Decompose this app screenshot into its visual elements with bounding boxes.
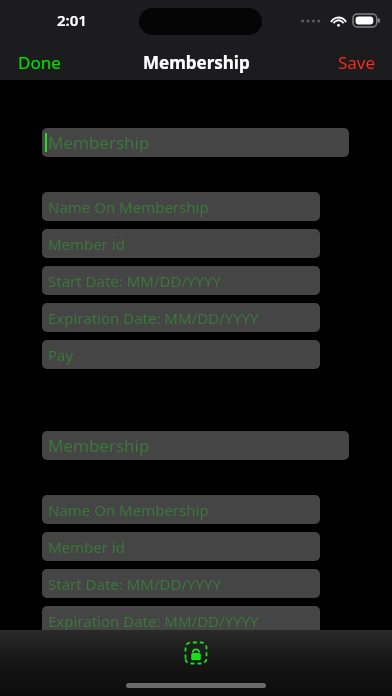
staticText: Name On Membership <box>48 197 209 217</box>
staticText: Member id <box>48 537 125 557</box>
button[interactable]: Save <box>326 45 392 80</box>
button[interactable]: Pay <box>42 643 320 672</box>
staticText: Save <box>338 51 376 74</box>
staticText: Done <box>18 51 61 74</box>
button[interactable]: Start Date: MM/DD/YYYY <box>42 266 320 295</box>
button[interactable]: Name On Membership <box>42 192 320 221</box>
staticText: Membership <box>48 131 150 154</box>
staticText: 2:01 <box>57 10 87 30</box>
button[interactable]: Secure password autofill <box>183 640 209 666</box>
staticText: Membership <box>48 434 150 457</box>
button[interactable]: Start Date: MM/DD/YYYY <box>42 569 320 598</box>
button[interactable]: Expiration Date: MM/DD/YYYY <box>42 303 320 332</box>
staticText: Expiration Date: MM/DD/YYYY <box>48 611 259 631</box>
staticText: Membership <box>143 51 250 74</box>
button[interactable]: Member id <box>42 532 320 561</box>
button[interactable]: Pay <box>42 340 320 369</box>
staticText: Name On Membership <box>48 500 209 520</box>
staticText: Pay <box>48 648 74 668</box>
button[interactable]: Expiration Date: MM/DD/YYYY <box>42 606 320 635</box>
button[interactable]: Membership <box>42 431 349 460</box>
staticText: Start Date: MM/DD/YYYY <box>48 271 221 291</box>
staticText: Member id <box>48 234 125 254</box>
staticText: Start Date: MM/DD/YYYY <box>48 574 221 594</box>
button[interactable]: Name On Membership <box>42 495 320 524</box>
staticText: Pay <box>48 345 74 365</box>
button[interactable]: Done <box>0 45 73 80</box>
button[interactable]: Membership <box>42 128 349 157</box>
staticText: Expiration Date: MM/DD/YYYY <box>48 308 259 328</box>
button[interactable]: Member id <box>42 229 320 258</box>
